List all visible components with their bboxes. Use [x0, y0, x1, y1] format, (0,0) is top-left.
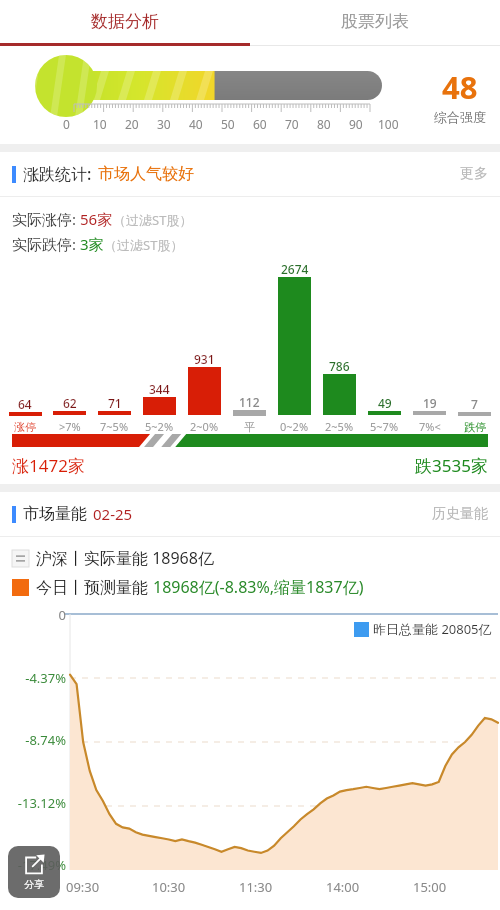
staticText: 70 — [285, 116, 299, 132]
button[interactable]: 市场量能 — [0, 492, 500, 536]
staticText: 11:30 — [239, 878, 273, 896]
staticText: 62 — [63, 395, 77, 411]
staticText: 344 — [149, 381, 170, 397]
staticText: 沪深丨实际量能 18968亿 — [36, 547, 214, 569]
staticText: 90 — [349, 116, 363, 132]
staticText: 19 — [423, 395, 437, 411]
staticText: 实际涨停: — [12, 209, 80, 229]
staticText: 7 — [471, 396, 478, 412]
staticText: 跌停 — [464, 420, 486, 434]
button[interactable]: 股票列表 — [250, 0, 500, 43]
staticText: -8.74% — [25, 731, 66, 749]
staticText: 昨日总量能 20805亿 — [373, 620, 492, 638]
staticText: 股票列表 — [341, 11, 409, 32]
staticText: 涨跌统计: — [23, 163, 92, 185]
staticText: 931 — [194, 351, 215, 367]
staticText: 涨停 — [14, 420, 36, 434]
staticText: -4.37% — [25, 669, 66, 687]
staticText: 7~5% — [100, 419, 129, 434]
staticText: 18968亿(-8.83%,缩量1837亿) — [153, 576, 364, 598]
staticText: 71 — [108, 395, 122, 411]
staticText: 10:30 — [152, 878, 186, 896]
staticText: 5~2% — [145, 419, 174, 434]
staticText: 80 — [317, 116, 331, 132]
staticText: 30 — [157, 116, 171, 132]
staticText: -17.49% — [17, 856, 66, 874]
staticText: 14:00 — [326, 878, 360, 896]
staticText: 综合强度 — [434, 109, 486, 125]
staticText: 更多 — [460, 165, 488, 183]
staticText: 15:00 — [413, 878, 447, 896]
staticText: 数据分析 — [91, 11, 159, 32]
staticText: 02-25 — [93, 504, 133, 524]
staticText: 市场人气较好 — [98, 164, 194, 184]
staticText: 64 — [18, 396, 32, 412]
staticText: 112 — [239, 394, 260, 410]
staticText: 56家 — [80, 209, 113, 229]
staticText: 20 — [125, 116, 139, 132]
staticText: -13.12% — [17, 794, 66, 812]
staticText: 涨1472家 — [12, 454, 85, 477]
staticText: 0~2% — [280, 419, 309, 434]
staticText: （过滤ST股） — [104, 236, 184, 254]
staticText: >7% — [59, 419, 81, 434]
button[interactable]: 涨跌统计: — [0, 152, 500, 196]
staticText: 50 — [221, 116, 235, 132]
staticText: 09:30 — [66, 878, 100, 896]
staticText: 2674 — [281, 261, 309, 277]
staticText: 实际跌停: — [12, 234, 80, 254]
staticText: 0 — [58, 606, 66, 624]
staticText: 786 — [329, 358, 350, 374]
staticText: 40 — [189, 116, 203, 132]
button[interactable]: 分享 — [8, 846, 60, 898]
staticText: 60 — [253, 116, 267, 132]
staticText: 市场量能 — [23, 504, 87, 524]
staticText: 5~7% — [370, 419, 399, 434]
staticText: 0 — [63, 116, 70, 132]
staticText: 平 — [244, 420, 255, 434]
staticText: 分享 — [24, 878, 44, 891]
staticText: 10 — [93, 116, 107, 132]
staticText: 49 — [378, 395, 392, 411]
staticText: 100 — [378, 116, 399, 132]
staticText: 7%< — [419, 419, 441, 434]
staticText: 跌3535家 — [415, 454, 488, 477]
staticText: 今日丨预测量能 — [36, 576, 153, 598]
staticText: 2~5% — [325, 419, 354, 434]
staticText: 48 — [442, 66, 478, 108]
button[interactable]: 数据分析 — [0, 0, 250, 43]
staticText: 2~0% — [190, 419, 219, 434]
staticText: （过滤ST股） — [113, 211, 193, 229]
staticText: 3家 — [80, 234, 104, 254]
staticText: 历史量能 — [432, 505, 488, 523]
